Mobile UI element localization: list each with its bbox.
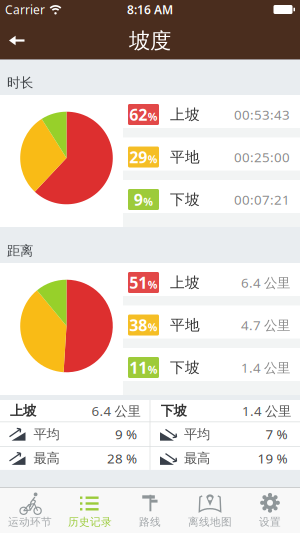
staticText: 7 % xyxy=(265,425,287,443)
staticText: 38 xyxy=(129,314,147,336)
button[interactable]: 运动环节 xyxy=(0,488,60,533)
staticText: 4.7 公里 xyxy=(241,316,290,334)
staticText: 设置 xyxy=(259,515,281,528)
staticText: 6.4 公里 xyxy=(241,274,290,291)
staticText: 00:25:00 xyxy=(234,148,290,166)
staticText: % xyxy=(148,277,158,292)
staticText: 下坡 xyxy=(170,190,200,208)
staticText: 00:53:43 xyxy=(234,106,290,123)
staticText: 平均 xyxy=(33,426,59,442)
button[interactable]: 路线 xyxy=(120,488,180,533)
staticText: 1.4 公里 xyxy=(242,402,291,420)
staticText: 平均 xyxy=(184,426,210,442)
staticText: 11 xyxy=(129,357,147,378)
staticText: 运动环节 xyxy=(8,515,52,528)
staticText: 9 % xyxy=(115,425,137,443)
staticText: 坡度 xyxy=(129,28,171,54)
staticText: 下坡 xyxy=(160,403,186,419)
staticText: 上坡 xyxy=(170,273,200,291)
button[interactable]: 历史记录 xyxy=(60,488,120,533)
staticText: % xyxy=(148,109,158,124)
staticText: 最高 xyxy=(184,450,210,467)
staticText: 离线地图 xyxy=(188,515,232,528)
staticText: 1.4 公里 xyxy=(241,359,290,376)
staticText: % xyxy=(143,194,153,209)
staticText: 上坡 xyxy=(10,403,36,419)
staticText: 历史记录 xyxy=(68,515,112,528)
staticText: 时长 xyxy=(7,75,33,91)
staticText: 62 xyxy=(129,104,147,125)
staticText: 距离 xyxy=(7,243,33,259)
staticText: 最高 xyxy=(33,450,59,467)
staticText: 下坡 xyxy=(170,358,200,376)
staticText: % xyxy=(148,362,158,377)
staticText: 上坡 xyxy=(170,105,200,123)
staticText: % xyxy=(148,152,158,166)
button[interactable]: 离线地图 xyxy=(180,488,240,533)
staticText: 8:16 AM xyxy=(127,1,173,17)
staticText: % xyxy=(148,320,158,334)
staticText: 9 xyxy=(134,189,143,210)
button[interactable]: Back xyxy=(0,22,25,56)
staticText: 平地 xyxy=(170,148,200,166)
staticText: 6.4 公里 xyxy=(91,402,140,420)
staticText: 19 % xyxy=(257,449,287,467)
staticText: 平地 xyxy=(170,316,200,334)
staticText: Carrier xyxy=(5,1,45,17)
staticText: 路线 xyxy=(139,515,161,528)
staticText: 29 xyxy=(129,146,147,168)
button[interactable]: 设置 xyxy=(240,488,300,533)
staticText: 00:07:21 xyxy=(234,191,290,208)
staticText: 28 % xyxy=(107,449,137,467)
staticText: 51 xyxy=(129,272,147,293)
